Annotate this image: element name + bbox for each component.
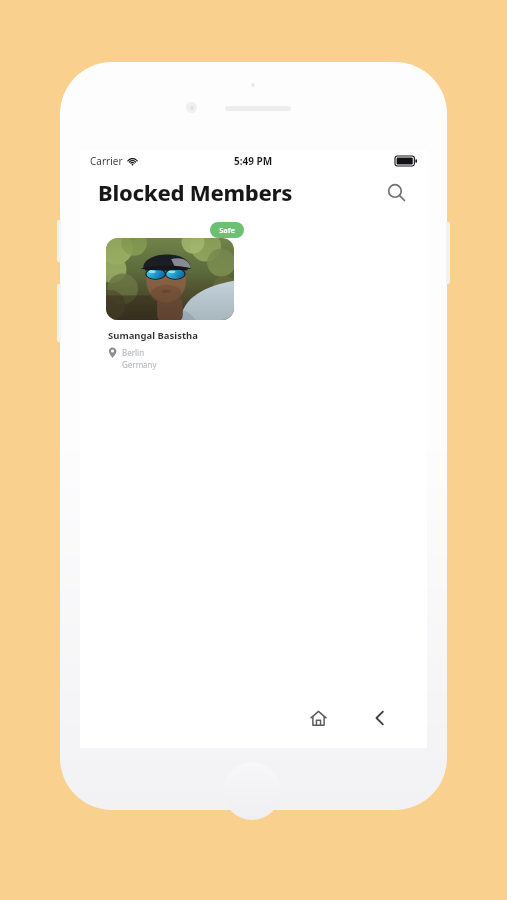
button[interactable]: Back — [365, 703, 395, 733]
staticText: Germany — [122, 359, 157, 370]
button[interactable]: Search — [381, 177, 411, 207]
staticText: Berlin — [122, 347, 145, 358]
button[interactable]: Sumangal Basistha — [98, 230, 242, 380]
button[interactable]: Safe — [210, 222, 244, 238]
staticText: Carrier — [90, 154, 123, 168]
staticText: Blocked Members — [98, 177, 293, 207]
staticText: 5:49 PM — [234, 154, 273, 168]
staticText: Sumangal Basistha — [108, 329, 198, 342]
staticText: Safe — [219, 225, 235, 235]
button[interactable]: Home — [303, 703, 333, 733]
other: Home button — [223, 762, 281, 820]
